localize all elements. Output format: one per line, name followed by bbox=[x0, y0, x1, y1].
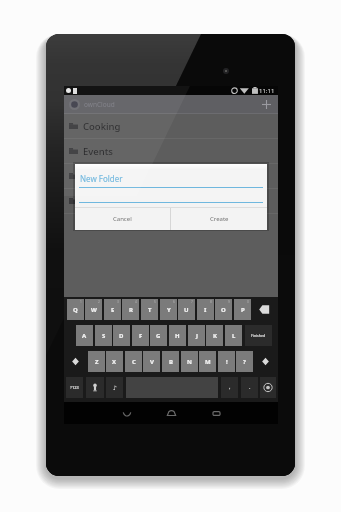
staticText: O bbox=[221, 306, 226, 314]
staticText: Events bbox=[83, 145, 113, 158]
button[interactable]: Settings bbox=[260, 377, 276, 398]
staticText: 8 bbox=[210, 300, 212, 304]
button[interactable]: F bbox=[132, 325, 149, 346]
button[interactable]: L bbox=[225, 325, 242, 346]
button[interactable]: X bbox=[106, 351, 123, 372]
button[interactable]: 8 bbox=[197, 299, 214, 320]
button[interactable]: Add bbox=[260, 98, 273, 111]
staticText: D bbox=[119, 332, 124, 340]
staticText: I bbox=[204, 306, 207, 314]
staticText: Q bbox=[73, 306, 78, 314]
staticText: Cancel bbox=[113, 215, 132, 223]
staticText: E bbox=[111, 306, 115, 314]
staticText: X bbox=[112, 358, 117, 366]
staticText: L bbox=[232, 332, 236, 340]
button[interactable]: Cancel bbox=[75, 208, 170, 230]
button[interactable]: , bbox=[221, 377, 238, 398]
button[interactable]: 9 bbox=[215, 299, 232, 320]
staticText: F bbox=[139, 332, 143, 340]
staticText: Cooking bbox=[83, 120, 121, 133]
button[interactable]: ♪ bbox=[106, 377, 123, 398]
staticText: S bbox=[102, 332, 106, 340]
staticText: ? bbox=[243, 358, 246, 366]
button[interactable]: V bbox=[143, 351, 160, 372]
button[interactable]: Recents bbox=[194, 402, 239, 424]
button[interactable]: H bbox=[169, 325, 186, 346]
staticText: 9 bbox=[228, 300, 230, 304]
staticText: K bbox=[213, 332, 217, 340]
staticText: T bbox=[148, 306, 152, 314]
staticText: 11:11 bbox=[259, 87, 275, 95]
button[interactable] bbox=[64, 164, 278, 188]
button[interactable]: Cooking bbox=[64, 114, 278, 138]
button[interactable]: M bbox=[199, 351, 216, 372]
button[interactable] bbox=[64, 189, 278, 213]
staticText: 3 bbox=[117, 300, 119, 304]
button[interactable]: N bbox=[181, 351, 198, 372]
staticText: . bbox=[249, 384, 251, 391]
button[interactable]: ! bbox=[218, 351, 235, 372]
staticText: ownCloud bbox=[84, 100, 115, 109]
button[interactable]: Finished bbox=[245, 325, 272, 346]
button[interactable]: 3 bbox=[104, 299, 121, 320]
staticText: 1 bbox=[80, 300, 82, 304]
staticText: V bbox=[150, 358, 154, 366]
button[interactable]: 4 bbox=[122, 299, 139, 320]
staticText: A bbox=[82, 332, 87, 340]
button[interactable]: Home bbox=[149, 402, 194, 424]
staticText: B bbox=[169, 358, 173, 366]
button[interactable]: 5 bbox=[141, 299, 158, 320]
staticText: 6 bbox=[173, 300, 175, 304]
button[interactable]: . bbox=[241, 377, 258, 398]
button[interactable]: K bbox=[206, 325, 223, 346]
button[interactable]: 2 bbox=[85, 299, 102, 320]
button[interactable]: Z bbox=[88, 351, 105, 372]
button[interactable]: ?123 bbox=[66, 377, 83, 398]
button[interactable]: A bbox=[76, 325, 93, 346]
staticText: H bbox=[175, 332, 180, 340]
staticText: W bbox=[91, 306, 97, 314]
button[interactable]: Shift bbox=[65, 351, 86, 372]
button[interactable]: Backspace bbox=[254, 299, 274, 320]
staticText: Finished bbox=[251, 333, 266, 338]
button[interactable]: 6 bbox=[160, 299, 177, 320]
staticText: Y bbox=[167, 306, 171, 314]
staticText: Create bbox=[210, 215, 229, 223]
button[interactable]: 1 bbox=[67, 299, 84, 320]
staticText: ♪ bbox=[113, 384, 117, 391]
staticText: Z bbox=[95, 358, 99, 366]
button[interactable]: Create bbox=[171, 208, 267, 230]
staticText: 2 bbox=[98, 300, 100, 304]
staticText: M bbox=[205, 358, 211, 366]
staticText: J bbox=[196, 332, 198, 340]
staticText: 0 bbox=[247, 300, 249, 304]
button[interactable]: B bbox=[162, 351, 179, 372]
button[interactable]: S bbox=[95, 325, 112, 346]
button[interactable]: 0 bbox=[234, 299, 251, 320]
staticText: 5 bbox=[154, 300, 156, 304]
staticText: 4 bbox=[135, 300, 137, 304]
staticText: N bbox=[187, 358, 192, 366]
staticText: P bbox=[241, 306, 245, 314]
button[interactable]: Events bbox=[64, 139, 278, 163]
staticText: ! bbox=[226, 358, 228, 366]
button[interactable]: Back bbox=[104, 402, 149, 424]
button[interactable]: J bbox=[188, 325, 205, 346]
button[interactable]: 7 bbox=[178, 299, 195, 320]
staticText: 7 bbox=[191, 300, 193, 304]
staticText: U bbox=[184, 306, 189, 314]
button[interactable]: D bbox=[113, 325, 130, 346]
staticText: New Folder bbox=[80, 173, 123, 184]
button[interactable]: C bbox=[125, 351, 142, 372]
staticText: , bbox=[229, 384, 231, 391]
button[interactable]: Shift bbox=[255, 351, 276, 372]
button[interactable]: G bbox=[150, 325, 167, 346]
button[interactable]: ? bbox=[236, 351, 253, 372]
button[interactable]: Voice input bbox=[86, 377, 104, 398]
staticText: R bbox=[129, 306, 133, 314]
staticText: C bbox=[132, 358, 136, 366]
staticText: G bbox=[156, 332, 161, 340]
staticText: ?123 bbox=[70, 385, 79, 390]
